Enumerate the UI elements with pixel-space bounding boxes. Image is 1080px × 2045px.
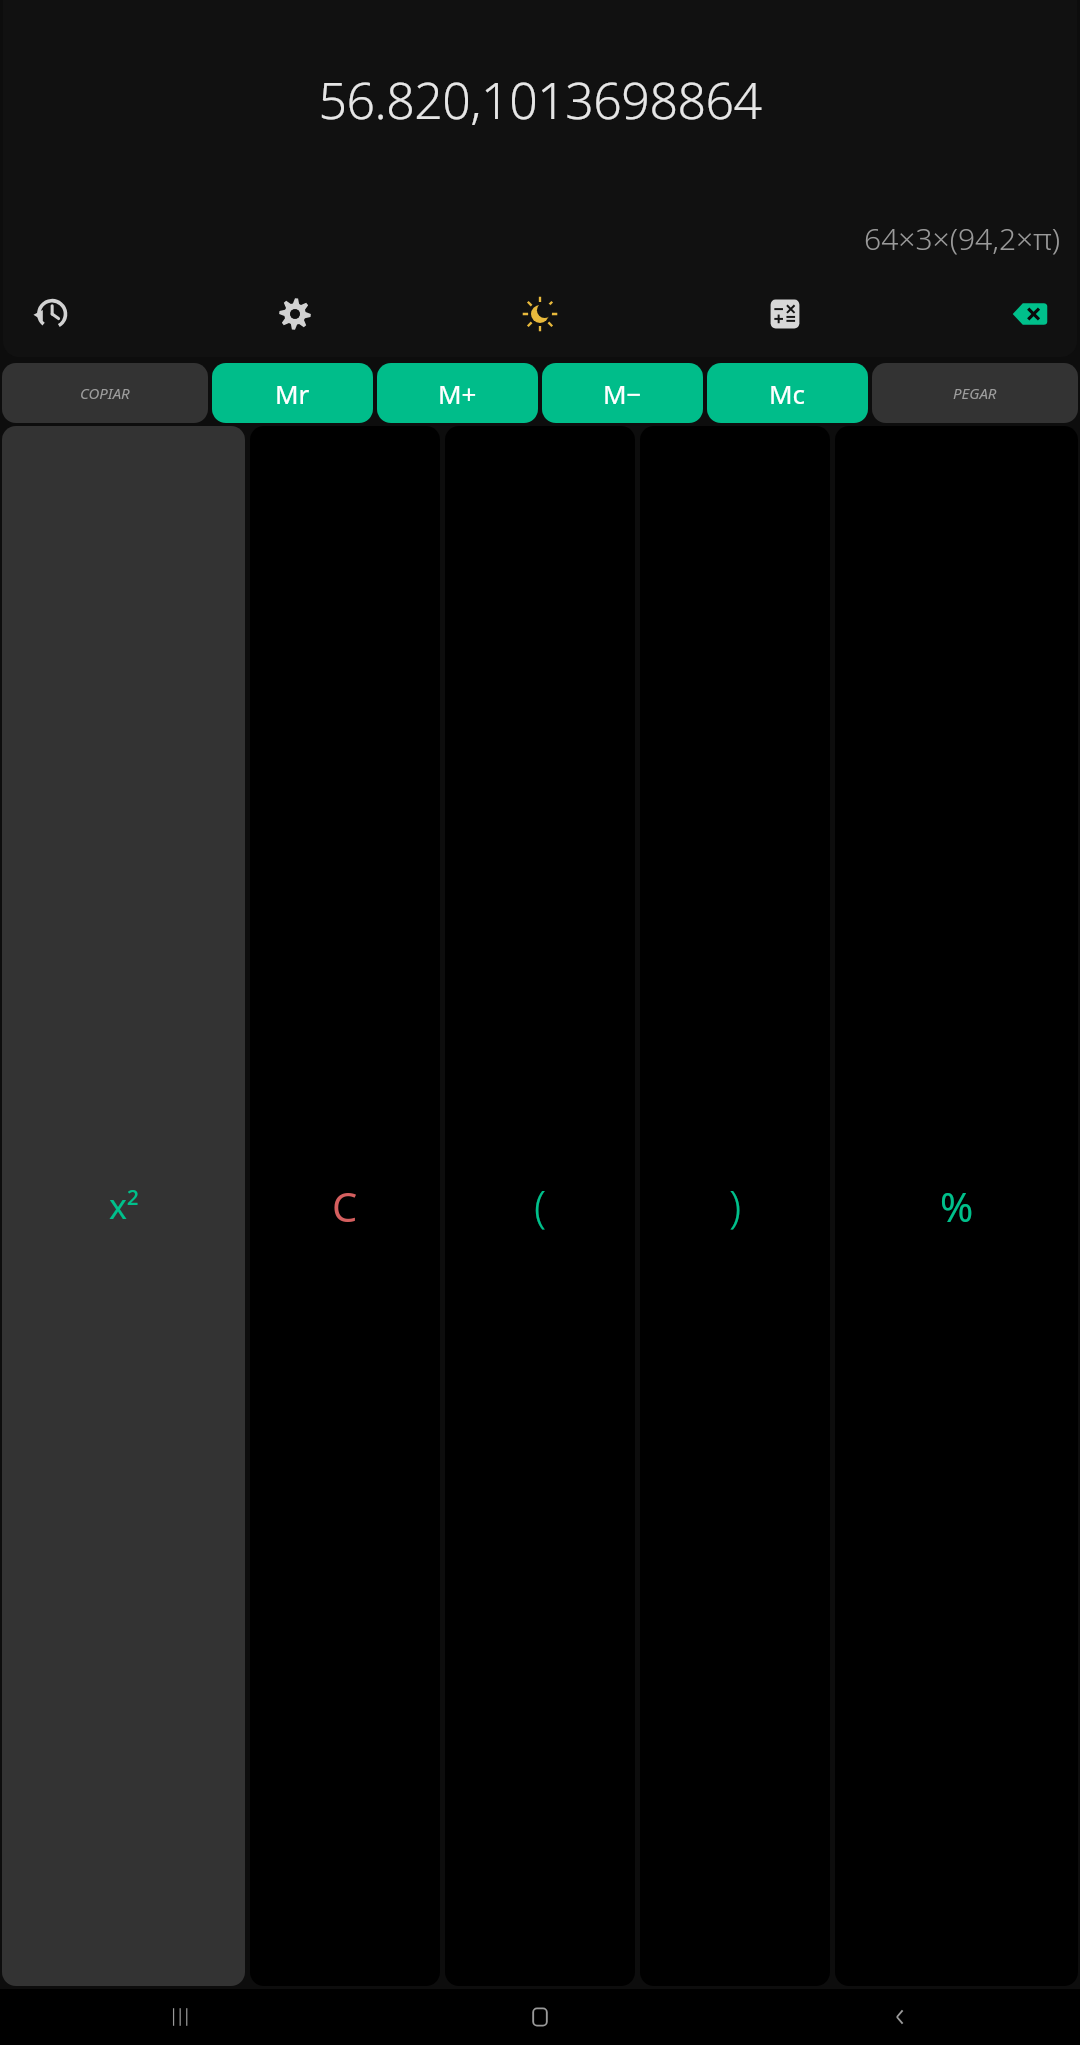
button[interactable]: Home — [516, 1993, 564, 2041]
staticText: 64×3×(94,2×π) — [864, 218, 1061, 259]
staticText: ) — [729, 1176, 742, 1236]
staticText: Mr — [275, 376, 310, 411]
staticText: C — [332, 1179, 358, 1233]
button[interactable]: Mc — [707, 363, 868, 423]
staticText: M+ — [438, 376, 477, 411]
button[interactable]: ) — [640, 426, 830, 1986]
button[interactable]: Recent apps — [156, 1993, 204, 2041]
button[interactable]: M− — [542, 363, 703, 423]
staticText: x² — [109, 1183, 139, 1229]
button[interactable]: Mr — [212, 363, 373, 423]
staticText: ( — [534, 1176, 547, 1236]
button[interactable]: % — [835, 426, 1078, 1986]
staticText: COPIAR — [80, 383, 130, 403]
staticText: PEGAR — [953, 383, 997, 403]
staticText: Mc — [769, 376, 806, 411]
button[interactable]: Backspace — [1001, 285, 1059, 343]
button[interactable]: History — [21, 285, 79, 343]
button[interactable]: COPIAR — [2, 363, 208, 423]
button[interactable]: x² — [2, 426, 245, 1986]
button[interactable]: C — [250, 426, 440, 1986]
button[interactable]: PEGAR — [872, 363, 1078, 423]
button[interactable]: Scientific calculator — [756, 285, 814, 343]
staticText: % — [940, 1179, 974, 1233]
button[interactable]: ( — [445, 426, 635, 1986]
button[interactable]: M+ — [377, 363, 538, 423]
staticText: M− — [603, 376, 642, 411]
button[interactable]: Theme — [511, 285, 569, 343]
button[interactable]: Back — [876, 1993, 924, 2041]
staticText: 56.820,1013698864 — [17, 66, 1063, 134]
button[interactable]: Settings — [266, 285, 324, 343]
